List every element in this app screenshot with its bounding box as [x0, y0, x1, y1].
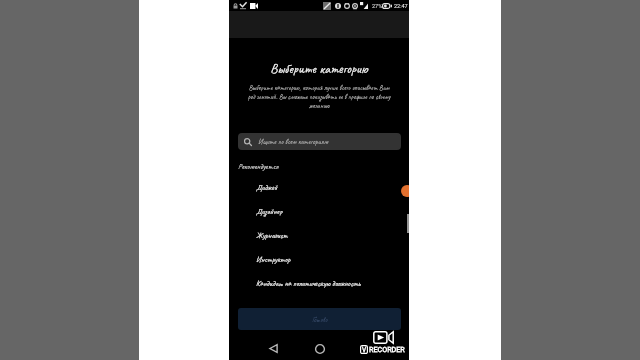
staticText: Ищите по всем категориям: [258, 137, 328, 146]
staticText: Готово: [312, 315, 328, 324]
staticText: Выберите категорию, которая лучше всего …: [229, 83, 409, 92]
staticText: RECORDER: [369, 345, 405, 353]
button[interactable]: Инструктор: [229, 247, 409, 271]
staticText: Журналист: [256, 230, 288, 240]
staticText: Дизайнер: [256, 206, 283, 216]
button[interactable]: Back: [266, 341, 281, 356]
staticText: 22:47: [394, 3, 408, 9]
button[interactable]: Дизайнер: [229, 199, 409, 223]
staticText: род занятий. Вы сможете показывать ее в …: [229, 92, 409, 101]
button[interactable]: Диджей: [229, 175, 409, 199]
button[interactable]: Кандидат на политическую должность: [229, 271, 409, 295]
staticText: желанию: [229, 101, 409, 110]
button[interactable]: Журналист: [229, 223, 409, 247]
staticText: Диджей: [256, 182, 278, 192]
button[interactable]: Home: [312, 341, 327, 356]
button[interactable]: Ищите по всем категориям: [238, 133, 401, 150]
staticText: Выберите категорию: [229, 60, 409, 77]
staticText: 27%: [372, 3, 383, 9]
staticText: Инструктор: [256, 254, 291, 264]
staticText: Рекомендуется: [238, 162, 279, 172]
staticText: Кандидат на политическую должность: [256, 278, 361, 288]
button[interactable]: Готово: [238, 308, 401, 330]
staticText: V: [362, 346, 367, 354]
